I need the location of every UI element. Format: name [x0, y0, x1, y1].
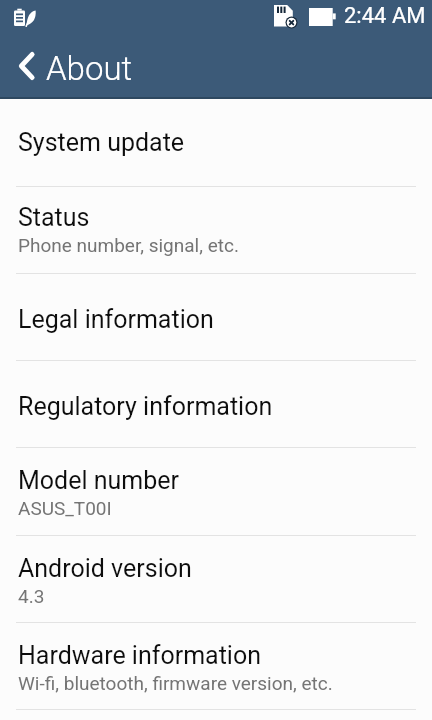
button[interactable]: Android version	[0, 536, 432, 622]
staticText: Hardware information	[18, 641, 262, 670]
button[interactable]: Legal information	[0, 274, 432, 360]
staticText: ASUS_T00I	[18, 497, 112, 519]
staticText: 2:44 AM	[344, 3, 426, 29]
staticText: Phone number, signal, etc.	[18, 234, 239, 256]
button[interactable]: Navigate up, About	[0, 36, 150, 97]
staticText: Android version	[18, 554, 192, 583]
staticText: About	[46, 49, 133, 88]
staticText: System update	[18, 128, 185, 157]
staticText: 4.3	[18, 585, 45, 607]
staticText: Wi-fi, bluetooth, firmware version, etc.	[18, 672, 333, 694]
staticText: Regulatory information	[18, 392, 273, 421]
button[interactable]: System update	[0, 99, 432, 186]
staticText: Status	[18, 203, 90, 232]
button[interactable]: Regulatory information	[0, 361, 432, 447]
button[interactable]: Model number	[0, 448, 432, 535]
staticText: Legal information	[18, 305, 214, 334]
button[interactable]: Hardware information	[0, 623, 432, 709]
staticText: Model number	[18, 466, 179, 495]
button[interactable]: Status	[0, 187, 432, 273]
